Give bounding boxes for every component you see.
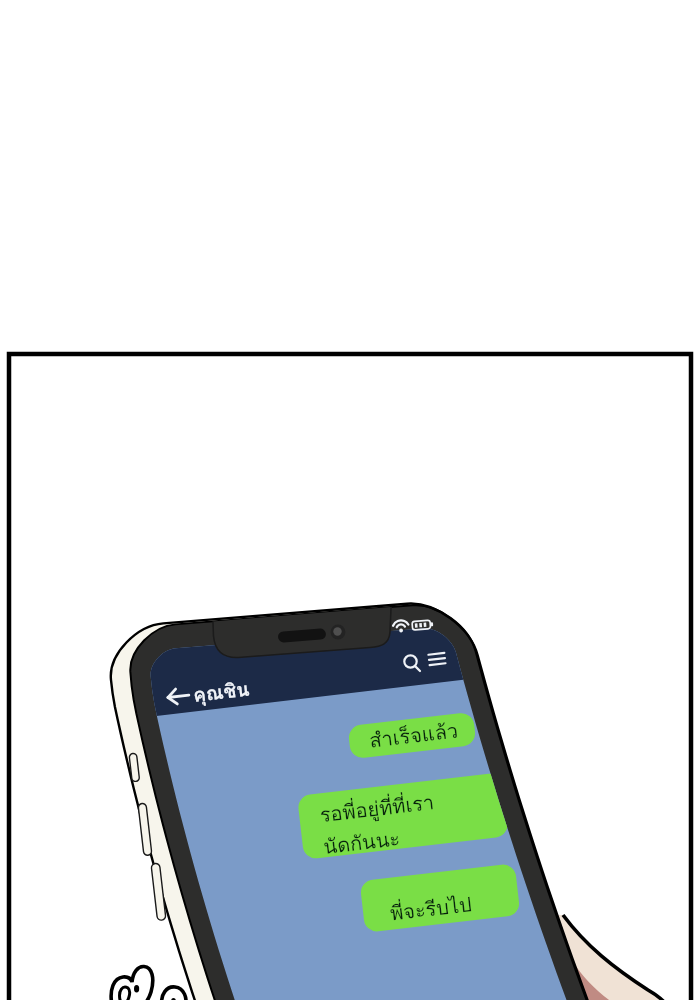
button[interactable]: Comic panel: hand holding a phone showin… bbox=[0, 0, 700, 1000]
